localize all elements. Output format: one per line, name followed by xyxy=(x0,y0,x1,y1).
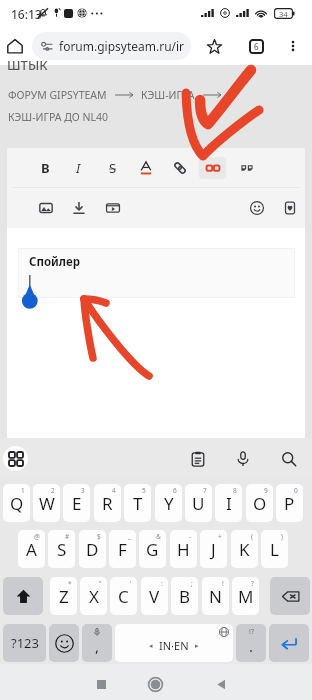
button[interactable]: K xyxy=(231,530,258,568)
button[interactable]: Emoji xyxy=(49,624,79,662)
staticText: P xyxy=(284,492,295,515)
staticText: F xyxy=(118,538,127,561)
staticText: ШТЫК xyxy=(7,56,48,74)
button[interactable]: . xyxy=(236,624,266,662)
button[interactable]: Search xyxy=(275,445,303,473)
button[interactable]: Enter xyxy=(269,624,309,662)
button[interactable]: Bookmark xyxy=(200,32,228,60)
button[interactable]: Text color xyxy=(129,150,162,186)
button[interactable]: A xyxy=(18,530,45,568)
staticText: ? xyxy=(251,579,254,588)
button[interactable]: W xyxy=(33,484,60,522)
staticText: V xyxy=(149,585,160,608)
button[interactable]: B xyxy=(171,577,198,615)
button[interactable]: C xyxy=(110,577,137,615)
staticText: M xyxy=(238,585,254,608)
button[interactable]: S xyxy=(48,530,75,568)
button[interactable]: Insert video xyxy=(96,190,129,226)
staticText: ?123 xyxy=(11,634,39,652)
button[interactable]: N xyxy=(202,577,229,615)
button[interactable]: forum.gipsyteam.ru/ir xyxy=(32,32,191,60)
button[interactable]: X xyxy=(80,577,107,615)
staticText: 6 xyxy=(254,41,259,52)
button[interactable]: I xyxy=(62,150,95,186)
button[interactable]: More options xyxy=(279,32,307,60)
staticText: 34 xyxy=(279,9,288,19)
staticText: $ xyxy=(97,532,101,541)
button[interactable]: Home xyxy=(1,32,29,60)
staticText: N xyxy=(209,585,222,608)
button[interactable]: Attach file xyxy=(62,190,95,226)
button[interactable]: Backspace xyxy=(270,577,310,615)
staticText: КЭШ-ИГРА xyxy=(141,88,195,102)
button[interactable]: P xyxy=(276,484,303,522)
staticText: - xyxy=(189,532,192,541)
button[interactable]: Tabs xyxy=(242,32,270,60)
staticText: _ xyxy=(128,532,131,541)
button[interactable]: Y xyxy=(155,484,182,522)
staticText: ФОРУМ GIPSYTEAM xyxy=(8,88,107,102)
button[interactable]: Voice input xyxy=(229,445,257,473)
button[interactable]: Spoiler xyxy=(196,150,229,186)
button[interactable]: F xyxy=(109,530,136,568)
staticText: K xyxy=(239,538,250,561)
button[interactable]: T xyxy=(124,484,151,522)
staticText: R xyxy=(102,492,113,515)
button[interactable]: Apps xyxy=(3,446,28,471)
button[interactable]: L xyxy=(261,530,288,568)
staticText: T xyxy=(133,492,143,515)
staticText: 4 xyxy=(112,486,116,495)
staticText: " xyxy=(99,579,102,588)
staticText: H xyxy=(177,538,190,561)
button[interactable]: Quote xyxy=(230,150,263,186)
staticText: 7 xyxy=(203,486,207,495)
button[interactable]: Insert image xyxy=(29,190,62,226)
button[interactable]: Q xyxy=(3,484,30,522)
button[interactable]: D xyxy=(79,530,106,568)
staticText: C xyxy=(118,585,129,608)
button[interactable]: O xyxy=(246,484,273,522)
staticText: Спойлер xyxy=(29,254,80,270)
button[interactable]: Space xyxy=(115,624,233,662)
button[interactable]: R xyxy=(94,484,121,522)
staticText: & xyxy=(156,532,161,541)
button[interactable]: S xyxy=(96,150,129,186)
button[interactable]: ?123 xyxy=(3,624,46,662)
staticText: forum.gipsyteam.ru/ir xyxy=(59,38,185,54)
staticText: B xyxy=(179,585,191,608)
button[interactable]: M xyxy=(232,577,259,615)
button[interactable]: Link xyxy=(163,150,196,186)
staticText: . xyxy=(249,636,254,656)
button[interactable]: , xyxy=(82,624,112,662)
staticText: 3 xyxy=(81,486,85,495)
staticText: G xyxy=(146,538,159,561)
staticText: , xyxy=(95,636,100,656)
staticText: S xyxy=(109,159,117,177)
staticText: E xyxy=(72,492,82,515)
button[interactable]: V xyxy=(141,577,168,615)
button[interactable]: I xyxy=(215,484,242,522)
staticText: ; xyxy=(191,579,193,588)
button[interactable]: H xyxy=(170,530,197,568)
button[interactable]: Clipboard xyxy=(184,445,212,473)
staticText: + xyxy=(218,532,222,541)
button[interactable]: G xyxy=(139,530,166,568)
staticText: @ xyxy=(34,532,40,541)
staticText: ) xyxy=(281,532,283,541)
staticText: Y xyxy=(164,492,174,515)
button[interactable]: Sticker xyxy=(273,190,306,226)
button[interactable]: B xyxy=(29,150,62,186)
button[interactable]: U xyxy=(185,484,212,522)
button[interactable]: Home xyxy=(133,664,177,700)
button[interactable]: E xyxy=(63,484,90,522)
button[interactable]: Back xyxy=(199,664,243,700)
button[interactable]: Z xyxy=(50,577,77,615)
staticText: ( xyxy=(251,532,253,541)
button[interactable]: Recents xyxy=(79,664,123,700)
staticText: L xyxy=(270,538,279,561)
staticText: D xyxy=(86,538,99,561)
button[interactable]: Shift xyxy=(3,577,43,615)
button[interactable]: J xyxy=(200,530,227,568)
staticText: ' xyxy=(130,579,132,588)
button[interactable]: Emoji xyxy=(240,190,273,226)
